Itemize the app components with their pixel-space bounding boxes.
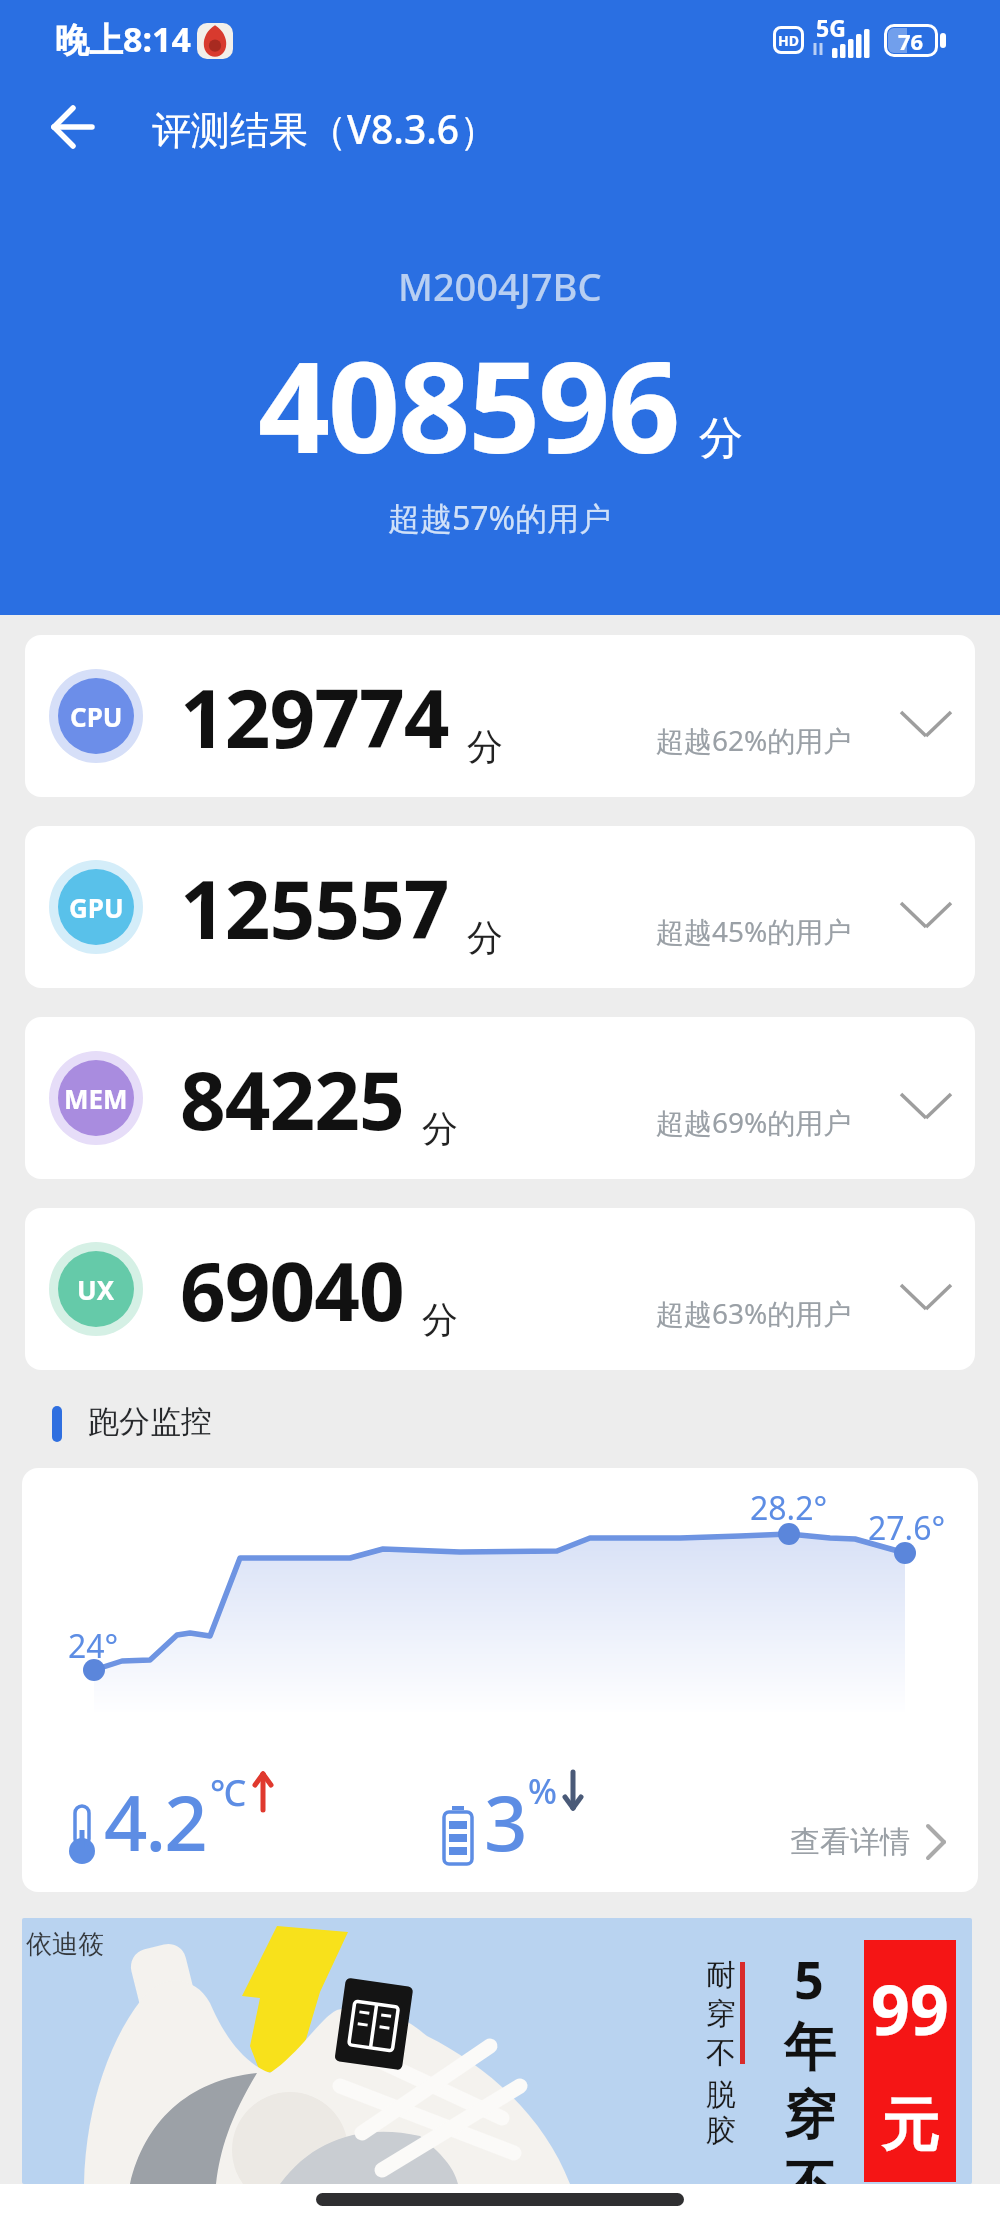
button[interactable]: 依迪筱 <box>22 1918 972 2184</box>
staticText: 胶 <box>706 2112 736 2150</box>
button[interactable]: 查看详情 <box>790 1820 950 1864</box>
staticText: 24° <box>68 1624 119 1668</box>
staticText: 超越69%的用户 <box>656 1103 852 1141</box>
staticText: 晚上8:14 <box>55 16 191 62</box>
staticText: 评测结果（V8.3.6） <box>152 102 499 155</box>
staticText: HD <box>778 31 799 50</box>
staticText: 408596 <box>258 318 679 490</box>
staticText: 依迪筱 <box>26 1928 104 1961</box>
button[interactable]: 24° <box>22 1468 978 1892</box>
button[interactable] <box>40 95 104 159</box>
button[interactable]: MEM <box>25 1017 975 1179</box>
staticText: 28.2° <box>750 1486 828 1530</box>
staticText: 69040 <box>180 1235 404 1344</box>
button[interactable]: GPU <box>25 826 975 988</box>
staticText: 不 <box>784 2153 836 2184</box>
staticText: 84225 <box>180 1044 404 1153</box>
staticText: 分 <box>467 724 503 769</box>
staticText: 3 <box>484 1770 528 1874</box>
staticText: 超越63%的用户 <box>656 1294 852 1332</box>
staticText: 穿 <box>784 2083 836 2149</box>
staticText: ℃ <box>210 1768 246 1817</box>
staticText: 超越62%的用户 <box>656 721 852 759</box>
staticText: 穿 <box>706 1995 736 2033</box>
staticText: 4.2 <box>104 1770 206 1874</box>
staticText: M2004J7BC <box>398 260 602 312</box>
button[interactable]: UX <box>25 1208 975 1370</box>
staticText: 分 <box>422 1106 458 1151</box>
staticText: 不 <box>706 2034 736 2072</box>
staticText: 耐 <box>706 1956 736 1994</box>
staticText: 129774 <box>180 662 449 771</box>
staticText: GPU <box>69 890 124 925</box>
staticText: 查看详情 <box>790 1823 910 1861</box>
staticText: 年 <box>784 2015 836 2081</box>
staticText: 27.6° <box>868 1506 946 1550</box>
staticText: 125557 <box>180 853 449 962</box>
staticText: UX <box>77 1272 115 1307</box>
staticText: 分 <box>422 1297 458 1342</box>
staticText: % <box>528 1768 557 1814</box>
button[interactable]: CPU <box>25 635 975 797</box>
staticText: 超越45%的用户 <box>656 912 852 950</box>
staticText: 5 <box>794 1943 824 2014</box>
staticText: 元 <box>881 2089 939 2162</box>
staticText: 跑分监控 <box>88 1402 212 1441</box>
staticText: MEM <box>64 1081 128 1116</box>
staticText: 76 <box>898 26 924 56</box>
staticText: CPU <box>70 699 123 734</box>
staticText: 超越57%的用户 <box>388 496 612 540</box>
staticText: 分 <box>699 411 743 466</box>
staticText: 脱 <box>706 2076 736 2114</box>
staticText: 分 <box>467 915 503 960</box>
staticText: 5G <box>816 12 846 43</box>
staticText: 99 <box>871 1962 949 2055</box>
